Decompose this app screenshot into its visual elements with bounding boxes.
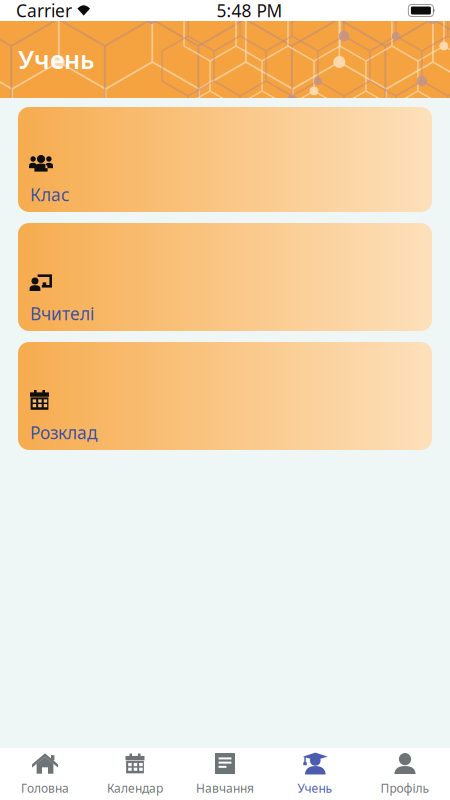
- staticText: Carrier: [16, 0, 72, 22]
- staticText: 5:48 PM: [216, 0, 282, 22]
- button[interactable]: Учень: [270, 744, 360, 800]
- button[interactable]: Календар: [90, 744, 180, 800]
- staticText: Профіль: [380, 780, 429, 796]
- staticText: Навчання: [196, 780, 254, 796]
- staticText: Календар: [107, 780, 163, 796]
- staticText: Учень: [18, 42, 95, 76]
- button[interactable]: Головна: [0, 744, 90, 800]
- staticText: Розклад: [30, 421, 98, 444]
- button[interactable]: Навчання: [180, 744, 270, 800]
- button[interactable]: Профіль: [360, 744, 450, 800]
- button[interactable]: Вчителі: [18, 223, 432, 331]
- button[interactable]: Розклад: [18, 342, 432, 450]
- button[interactable]: Клас: [18, 107, 432, 212]
- staticText: Клас: [30, 183, 70, 206]
- staticText: Вчителі: [30, 302, 94, 325]
- staticText: Головна: [21, 780, 69, 796]
- staticText: Учень: [297, 780, 332, 796]
